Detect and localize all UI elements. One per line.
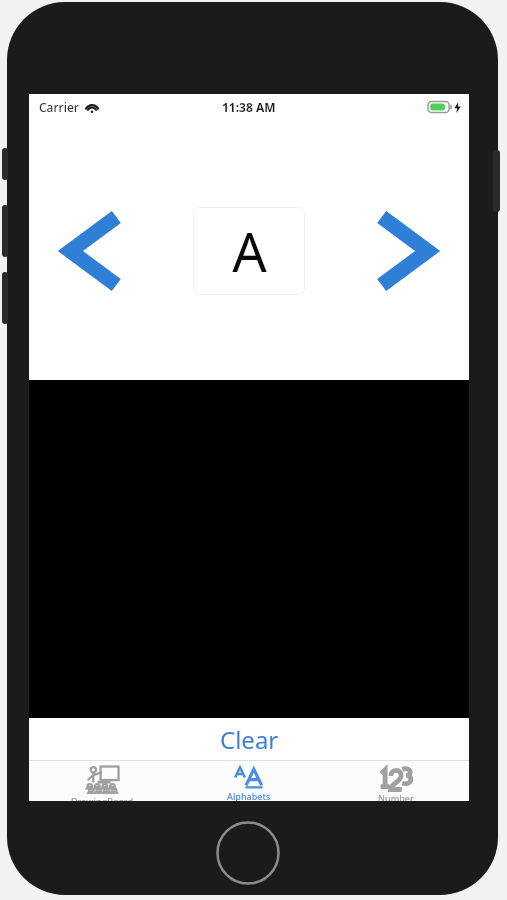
staticText: Number <box>378 792 414 801</box>
staticText: DrawingBoard <box>71 795 134 801</box>
button[interactable]: Alphabets <box>175 761 322 801</box>
button[interactable]: DrawingBoard <box>29 761 175 801</box>
staticText: 11:38 AM <box>222 99 276 115</box>
button[interactable]: Previous letter <box>61 204 123 298</box>
button[interactable]: Number <box>322 761 469 801</box>
button[interactable]: Clear <box>29 718 469 760</box>
staticText: Alphabets <box>227 790 271 801</box>
staticText: Carrier <box>39 99 79 115</box>
button[interactable]: A <box>193 207 305 295</box>
staticText: A <box>232 214 267 288</box>
staticText: Clear <box>220 723 279 756</box>
button[interactable]: Next letter <box>375 204 437 298</box>
